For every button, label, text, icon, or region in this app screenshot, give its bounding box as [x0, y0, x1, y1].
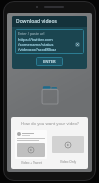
staticText: Download videos	[16, 18, 57, 25]
staticText: Video Only	[60, 160, 77, 164]
staticText: Video + Tweet	[21, 161, 42, 165]
button[interactable]: Video Only	[52, 130, 84, 164]
staticText: How do you want your video?	[21, 121, 79, 127]
button[interactable]: Clear	[74, 41, 81, 48]
button[interactable]: ENTER	[36, 57, 63, 66]
staticText: ENTER	[43, 59, 56, 64]
staticText: Enter / paste url	[18, 31, 45, 36]
staticText: https://twitter.com /somename/status /vi…	[18, 37, 74, 52]
button[interactable]: Video + Tweet	[15, 130, 47, 165]
